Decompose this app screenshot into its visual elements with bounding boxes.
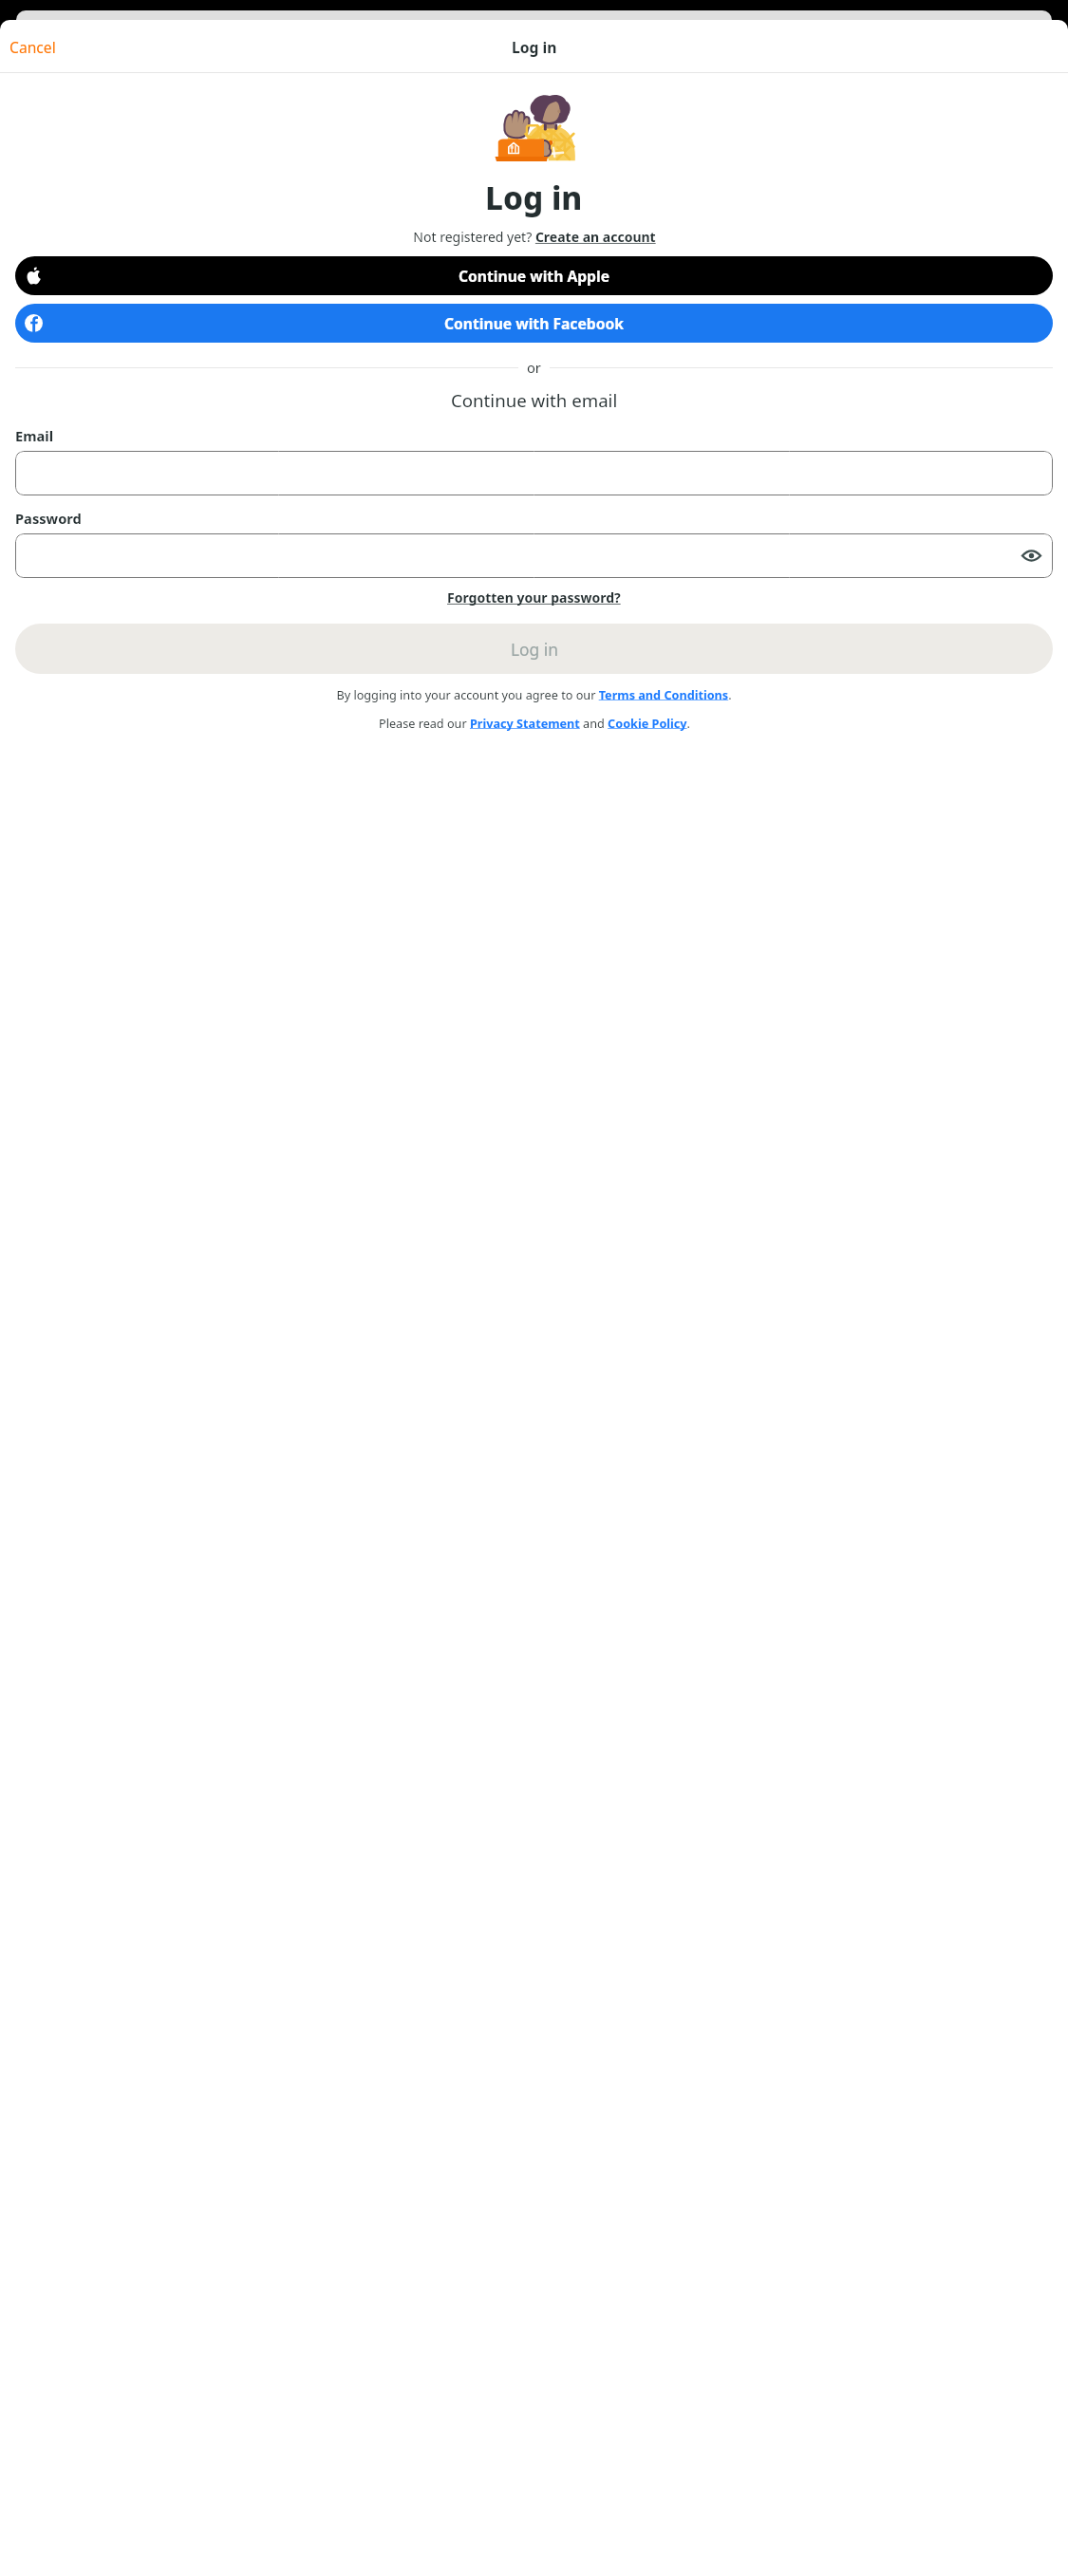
staticText: Continue with email: [451, 388, 618, 412]
staticText: Log in: [511, 638, 558, 661]
staticText: Log in: [485, 176, 583, 218]
staticText: Continue with Apple: [459, 266, 610, 286]
staticText: Continue with Facebook: [444, 313, 624, 333]
button[interactable]: Not registered yet? Create an account: [412, 227, 657, 247]
button[interactable]: [15, 451, 1053, 495]
staticText: Not registered yet? Create an account: [413, 228, 656, 246]
staticText: Email: [15, 426, 1053, 445]
staticText: Log in: [512, 37, 557, 57]
staticText: Forgotten your password?: [447, 588, 621, 607]
button[interactable]: Log in: [15, 624, 1053, 674]
button[interactable]: Facebook: [15, 304, 1053, 343]
other: Illustration: [487, 93, 582, 161]
staticText: By logging into your account you agree t…: [336, 686, 732, 702]
other: Apple: [25, 267, 43, 285]
button[interactable]: Forgotten your password?: [445, 587, 623, 608]
button[interactable]: By logging into your account you agree t…: [336, 686, 732, 702]
other: Facebook: [25, 314, 43, 332]
button[interactable]: Cancel: [6, 34, 60, 60]
button[interactable]: Apple: [15, 256, 1053, 295]
staticText: Password: [15, 509, 1053, 528]
staticText: Please read our Privacy Statement and Co…: [379, 715, 690, 731]
button[interactable]: Show password: [15, 533, 1053, 578]
staticText: Cancel: [9, 37, 56, 57]
button[interactable]: Please read our Privacy Statement and Co…: [379, 715, 690, 731]
button[interactable]: Show password: [1021, 545, 1042, 567]
staticText: or: [527, 358, 541, 377]
